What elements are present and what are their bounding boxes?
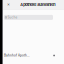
staticText: Apotheke auswählen bbox=[20, 2, 55, 7]
staticText: ✕ bbox=[7, 2, 10, 6]
staticText: Bahnhof Apotheke, Hauptstr. 1 bbox=[4, 54, 30, 57]
button[interactable]: Close bbox=[5, 0, 11, 9]
staticText: Suche bbox=[7, 15, 17, 19]
button[interactable]: Bahnhof Apotheke, Hauptstr. 1 bbox=[3, 53, 64, 58]
